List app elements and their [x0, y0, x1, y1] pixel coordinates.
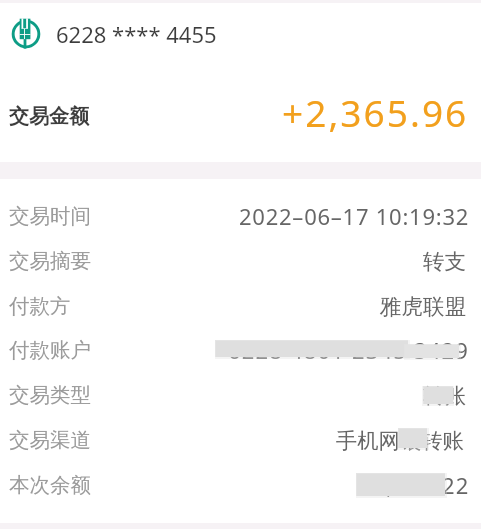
button[interactable]: 交易类型	[9, 373, 466, 417]
button[interactable]: 付款方	[9, 284, 466, 328]
button[interactable]: 交易时间	[9, 194, 470, 238]
button[interactable]: 交易摘要	[9, 239, 466, 283]
staticText: 转账	[423, 382, 466, 409]
button[interactable]: 付款账户	[9, 328, 470, 372]
staticText: 交易时间	[9, 203, 91, 229]
staticText: 本次余额	[9, 472, 91, 498]
staticText: 6228 **** 4455	[56, 19, 217, 49]
staticText: 转支	[423, 248, 466, 275]
staticText: 交易类型	[9, 382, 91, 408]
staticText: 手机网银转账	[336, 427, 464, 454]
button[interactable]: Bank logo	[0, 0, 481, 71]
staticText: 13,492.22	[359, 470, 470, 500]
staticText: 付款方	[9, 293, 71, 319]
staticText: 交易摘要	[9, 248, 91, 274]
button[interactable]: 交易渠道	[9, 418, 464, 462]
staticText: 付款账户	[9, 337, 91, 363]
staticText: 2022–06–17 10:19:32	[239, 201, 470, 231]
staticText: 雅虎联盟	[380, 293, 466, 320]
staticText: +2,365.96	[282, 87, 469, 137]
staticText: 交易渠道	[9, 427, 91, 453]
other: Bank logo	[11, 19, 41, 49]
staticText: 交易金额	[9, 104, 89, 129]
staticText: 6228 4801 2345 3429	[228, 335, 470, 365]
button[interactable]: 本次余额	[9, 463, 470, 507]
